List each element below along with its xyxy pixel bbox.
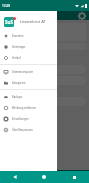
button[interactable]: Jetzt Statistika bbox=[3, 75, 86, 86]
button[interactable]: Back bbox=[0, 171, 29, 183]
button[interactable]: Über/Impressum bbox=[0, 124, 57, 135]
button[interactable]: Steinträger bbox=[0, 41, 57, 52]
button[interactable]: Werbung entfernen bbox=[0, 102, 57, 113]
button[interactable]: Tab bbox=[67, 170, 89, 183]
button[interactable]: Verlauf bbox=[0, 52, 57, 63]
staticText: SuS bbox=[5, 19, 13, 25]
button[interactable]: Tab bbox=[0, 170, 23, 183]
button[interactable]: Settings bbox=[79, 13, 85, 19]
button[interactable]: Wie Verwaltung bbox=[3, 96, 86, 107]
button[interactable]: Kategorien bbox=[0, 77, 57, 88]
button[interactable]: Wie Analyse bbox=[3, 64, 86, 75]
button[interactable]: Tab bbox=[45, 170, 67, 183]
button[interactable]: Anlauf 1 BVA bbox=[3, 43, 86, 50]
staticText: Löwenbrot AT bbox=[20, 19, 46, 24]
staticText: Einstellungen bbox=[12, 117, 29, 121]
staticText: Steinträger bbox=[12, 45, 26, 49]
button[interactable]: Favoriten bbox=[0, 30, 57, 41]
staticText: Über/Impressum bbox=[12, 128, 33, 132]
button[interactable]: Grammcomputer bbox=[0, 66, 57, 77]
staticText: Grammcomputer bbox=[12, 70, 34, 74]
staticText: Backups bbox=[12, 95, 23, 99]
button[interactable]: Einstellungen bbox=[0, 113, 57, 124]
button[interactable]: Recents bbox=[59, 171, 89, 183]
staticText: Werbung entfernen bbox=[12, 106, 37, 110]
button[interactable]: Tab bbox=[23, 170, 45, 183]
staticText: Kategorien bbox=[12, 81, 26, 85]
staticText: Favoriten bbox=[12, 34, 24, 38]
staticText: Mein Allgemeinrechner bbox=[32, 28, 58, 36]
button[interactable]: Home bbox=[29, 171, 59, 183]
button[interactable]: Backups bbox=[0, 91, 57, 102]
staticText: Verlauf bbox=[12, 56, 21, 60]
button[interactable]: Mein Allgemeinrechner bbox=[3, 23, 86, 41]
staticText: 13:39 bbox=[2, 4, 11, 8]
